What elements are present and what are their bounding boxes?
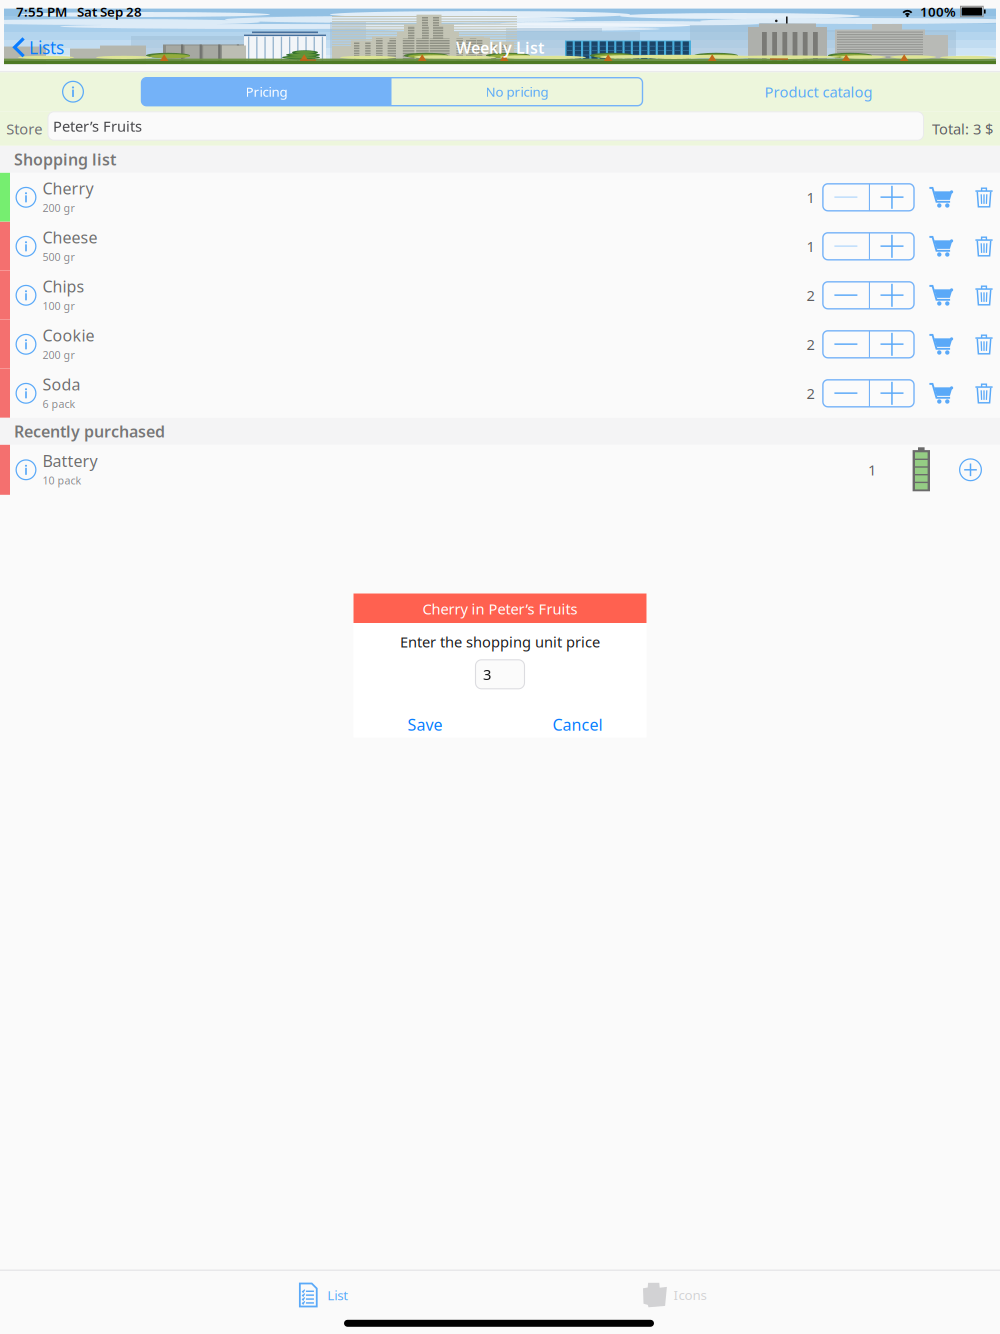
staticText: 10 pack <box>42 473 81 487</box>
button[interactable]: Delete Soda <box>975 382 993 404</box>
staticText: Cherry in Peter’s Fruits <box>422 599 577 618</box>
staticText: 2 <box>806 335 814 354</box>
button[interactable]: Pricing <box>141 78 391 106</box>
staticText: Battery <box>42 450 97 471</box>
staticText: Pricing <box>245 83 287 100</box>
button[interactable]: Decrease quantity <box>823 184 869 211</box>
button[interactable]: Increase quantity <box>870 282 914 309</box>
staticText: Shopping list <box>14 149 116 170</box>
button[interactable]: Cancel <box>504 710 650 738</box>
button[interactable]: List <box>198 1273 448 1317</box>
button[interactable]: Decrease quantity <box>823 380 869 407</box>
staticText: 6 pack <box>42 397 75 411</box>
button[interactable]: Information <box>54 73 92 111</box>
staticText: 1 <box>806 237 814 256</box>
button[interactable]: Delete Cherry <box>975 186 993 208</box>
staticText: Soda <box>42 374 80 395</box>
staticText: Cancel <box>552 714 602 735</box>
staticText: Sat Sep 28 <box>77 3 142 20</box>
staticText: 1 <box>806 188 814 207</box>
button[interactable]: Info about Cheese <box>15 224 37 269</box>
staticText: No pricing <box>485 83 548 100</box>
staticText: 100% <box>920 3 956 20</box>
button[interactable]: Info about Soda <box>15 371 37 416</box>
button[interactable]: Add Battery <box>959 458 982 481</box>
staticText: 2 <box>806 384 814 403</box>
staticText: 200 gr <box>42 201 74 215</box>
staticText: Save <box>407 714 442 735</box>
staticText: Icons <box>673 1286 706 1304</box>
button[interactable]: Increase quantity <box>870 233 914 260</box>
button[interactable]: Delete Chips <box>975 284 993 306</box>
staticText: Cherry <box>42 178 93 199</box>
button[interactable]: Delete Cookie <box>975 333 993 355</box>
staticText: Weekly List <box>456 37 544 58</box>
staticText: 7:55 PM <box>16 3 67 20</box>
button[interactable]: Increase quantity <box>870 380 914 407</box>
button[interactable]: Increase quantity <box>870 331 914 358</box>
button[interactable]: Info about Battery <box>15 447 37 492</box>
button[interactable]: Product catalog <box>723 77 913 107</box>
button[interactable]: Peter’s Fruits <box>48 112 923 140</box>
button[interactable]: Info about Cookie <box>15 322 37 367</box>
button[interactable]: Decrease quantity <box>823 331 869 358</box>
staticText: 2 <box>806 286 814 305</box>
button[interactable]: Increase quantity <box>870 184 914 211</box>
staticText: Lists <box>29 36 64 59</box>
staticText: List <box>327 1286 348 1304</box>
staticText: Peter’s Fruits <box>53 116 142 136</box>
staticText: Enter the shopping unit price <box>400 632 600 651</box>
staticText: 200 gr <box>42 348 74 362</box>
button[interactable]: Decrease quantity <box>823 282 869 309</box>
staticText: 500 gr <box>42 250 74 264</box>
staticText: Product catalog <box>764 82 872 101</box>
staticText: 3 <box>483 665 491 684</box>
button[interactable]: Add Chips to cart <box>928 284 953 306</box>
staticText: Cheese <box>42 227 97 248</box>
staticText: Total: 3 $ <box>932 119 993 139</box>
button[interactable]: No pricing <box>391 78 642 106</box>
button[interactable]: Save <box>352 710 498 738</box>
staticText: Recently purchased <box>14 421 165 442</box>
staticText: 1 <box>868 460 876 480</box>
button[interactable]: Info about Cherry <box>15 175 37 220</box>
button[interactable]: Icons <box>549 1273 799 1317</box>
staticText: Cookie <box>42 325 94 346</box>
button[interactable]: Add Cheese to cart <box>928 235 953 257</box>
staticText: 100 gr <box>42 299 74 313</box>
staticText: Store <box>6 119 42 139</box>
button[interactable]: Decrease quantity <box>823 233 869 260</box>
button[interactable]: Add Cookie to cart <box>928 333 953 355</box>
button[interactable]: Add Soda to cart <box>928 382 953 404</box>
button[interactable]: Add Cherry to cart <box>928 186 953 208</box>
button[interactable]: Delete Cheese <box>975 235 993 257</box>
button[interactable]: Info about Chips <box>15 273 37 318</box>
staticText: Chips <box>42 276 84 297</box>
button[interactable]: Lists <box>13 30 133 64</box>
